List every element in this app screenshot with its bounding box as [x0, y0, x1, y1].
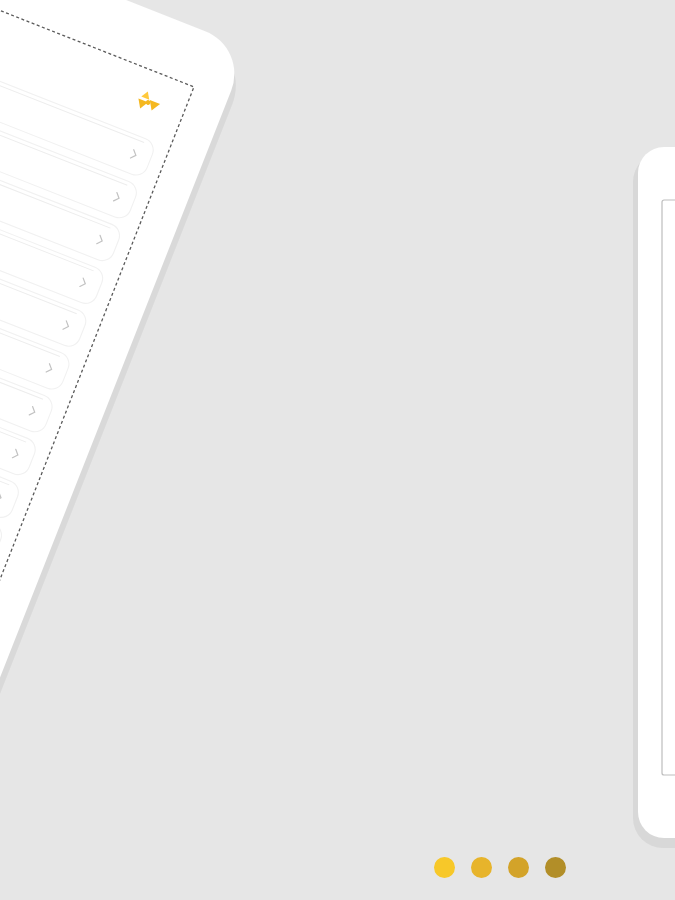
button[interactable]: Page 3 — [508, 857, 529, 878]
button[interactable]: Page 2 — [471, 857, 492, 878]
button[interactable]: Page 1 — [434, 857, 455, 878]
button[interactable]: Page 4 — [545, 857, 566, 878]
